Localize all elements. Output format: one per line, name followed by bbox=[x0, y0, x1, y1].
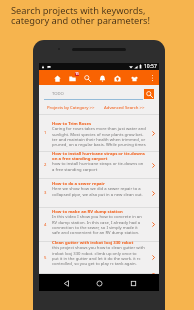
button[interactable]: Advanced Search >> bbox=[104, 104, 145, 110]
button[interactable]: Projects by Category >> bbox=[47, 104, 95, 110]
button[interactable]: Projects bbox=[67, 72, 77, 84]
staticText: 4 bbox=[44, 222, 47, 228]
staticText: How to make an RV dump station bbox=[52, 208, 123, 214]
staticText: Caring for roses takes more than just wa… bbox=[52, 126, 146, 147]
staticText: 2 bbox=[44, 162, 47, 168]
button[interactable]: Recent apps bbox=[126, 276, 140, 290]
staticText: Clean gutter with irobot looj 330 robot bbox=[52, 239, 134, 245]
staticText: 3 bbox=[44, 190, 47, 196]
staticText: Here we show how we did a sewer repair t… bbox=[52, 186, 143, 197]
staticText: How to install hurricane straps or tie-d… bbox=[52, 150, 145, 161]
staticText: Advanced Search >> bbox=[104, 104, 145, 110]
staticText: 5 bbox=[44, 255, 47, 261]
staticText: 10:57 bbox=[144, 63, 157, 70]
staticText: 1 bbox=[44, 130, 47, 136]
button[interactable]: Search bbox=[82, 72, 92, 84]
staticText: Projects by Category >> bbox=[47, 104, 95, 110]
staticText: How to Trim Roses bbox=[52, 120, 92, 126]
button[interactable]: 3 bbox=[39, 179, 159, 207]
staticText: Search projects with keywords, category … bbox=[11, 4, 151, 26]
button[interactable]: Back bbox=[59, 276, 73, 290]
staticText: this project shows you how to clean gutt… bbox=[52, 245, 145, 266]
staticText: how to install hurricane straps or tie-d… bbox=[52, 161, 144, 172]
button[interactable]: Secure home bbox=[112, 72, 122, 84]
staticText: 11 bbox=[75, 72, 79, 76]
button[interactable]: 4 bbox=[39, 208, 159, 241]
button[interactable]: Home bbox=[52, 72, 62, 84]
button[interactable]: 1 bbox=[39, 115, 159, 151]
button[interactable]: 5 bbox=[39, 242, 159, 273]
button[interactable]: More options bbox=[148, 73, 156, 82]
staticText: In this video I show you how to concrete… bbox=[52, 214, 142, 235]
staticText: How to do a sewer repair bbox=[52, 180, 105, 186]
button[interactable]: Home bbox=[92, 276, 106, 290]
button[interactable]: Profile bbox=[129, 72, 139, 84]
staticText: TODO bbox=[52, 91, 64, 97]
button[interactable]: Notifications bbox=[97, 72, 107, 84]
button[interactable]: Search bbox=[144, 89, 154, 99]
button[interactable]: 2 bbox=[39, 152, 159, 178]
